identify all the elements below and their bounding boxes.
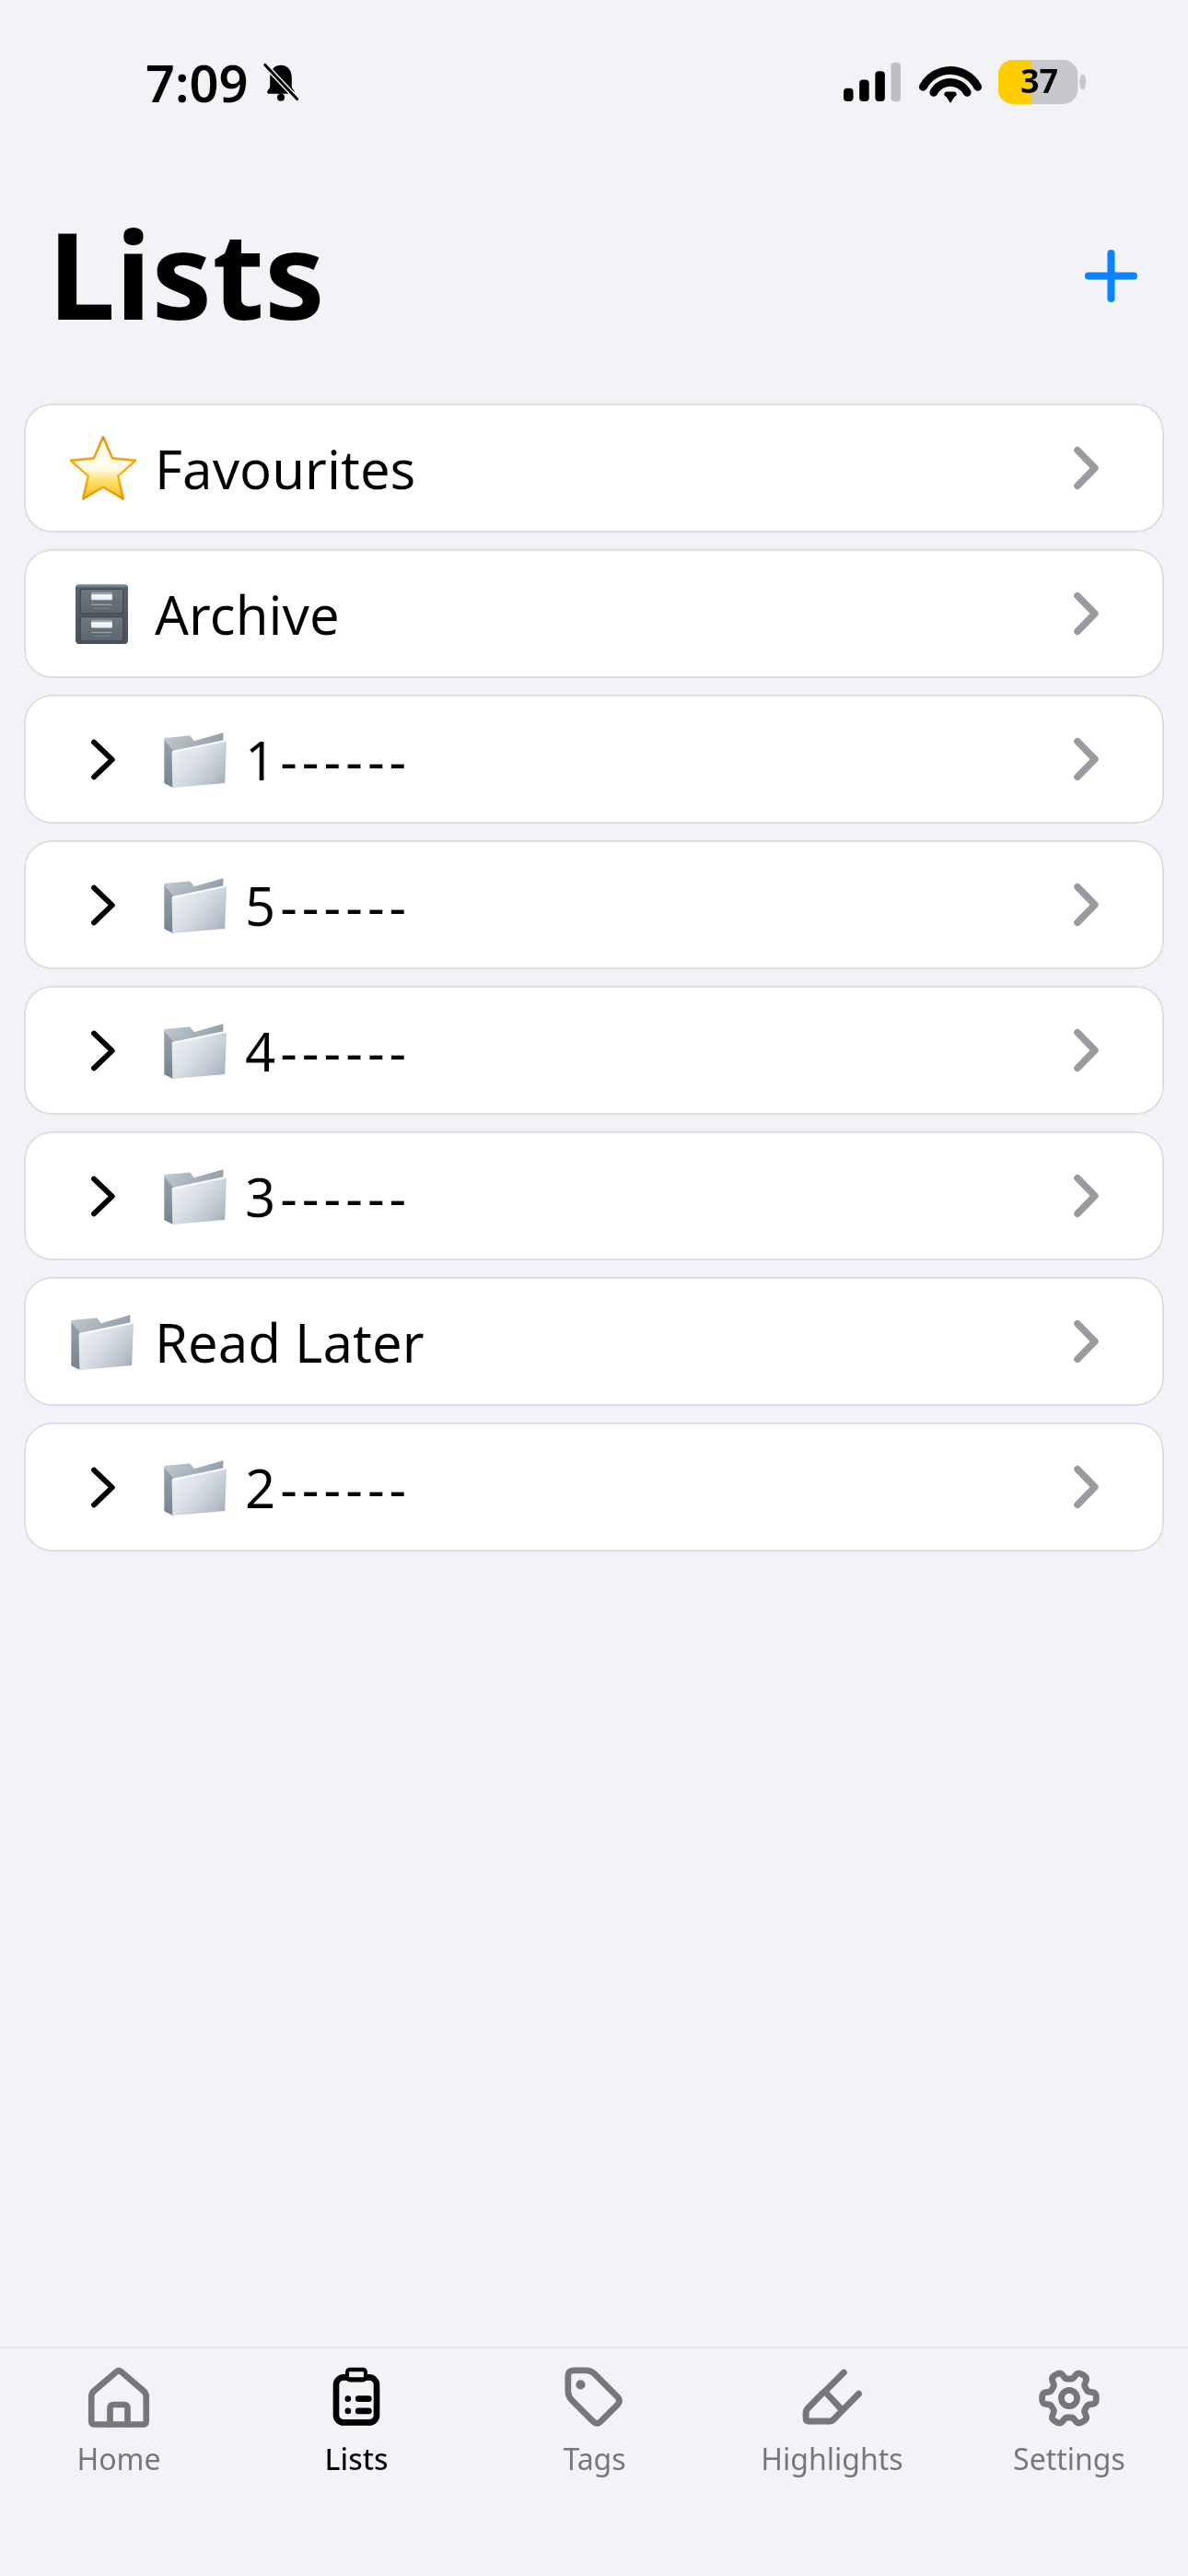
- staticText: Lists: [324, 2439, 389, 2479]
- staticText: 3------: [245, 1160, 412, 1233]
- staticText: Favourites: [155, 432, 416, 505]
- button[interactable]: Lists: [238, 2348, 475, 2576]
- button[interactable]: Expand 4------: [81, 1029, 123, 1071]
- button[interactable]: Expand 5------: [81, 884, 123, 926]
- button[interactable]: Expand 4------: [24, 986, 1164, 1115]
- button[interactable]: Add list: [1068, 239, 1142, 312]
- button[interactable]: Favourites: [24, 404, 1164, 533]
- staticText: Lists: [48, 191, 325, 355]
- button[interactable]: Archive: [24, 549, 1164, 678]
- staticText: 2------: [245, 1451, 412, 1524]
- button[interactable]: Expand 1------: [24, 695, 1164, 824]
- staticText: Home: [76, 2439, 161, 2479]
- staticText: Archive: [155, 578, 340, 650]
- button[interactable]: Expand 3------: [24, 1131, 1164, 1260]
- staticText: 37: [1020, 58, 1059, 103]
- button[interactable]: Read Later: [24, 1277, 1164, 1406]
- staticText: 7:09: [146, 47, 249, 117]
- staticText: 1------: [245, 723, 412, 796]
- staticText: Read Later: [155, 1306, 425, 1378]
- button[interactable]: Expand 3------: [81, 1175, 123, 1217]
- button[interactable]: Expand 2------: [81, 1466, 123, 1508]
- button[interactable]: Settings: [950, 2348, 1188, 2576]
- button[interactable]: Expand 5------: [24, 840, 1164, 969]
- staticText: 4------: [245, 1014, 412, 1087]
- staticText: 5------: [245, 869, 412, 942]
- staticText: Tags: [563, 2439, 626, 2479]
- staticText: Highlights: [761, 2439, 903, 2479]
- button[interactable]: Expand 1------: [81, 738, 123, 780]
- button[interactable]: Expand 2------: [24, 1423, 1164, 1551]
- button[interactable]: Highlights: [713, 2348, 950, 2576]
- staticText: Settings: [1013, 2439, 1125, 2479]
- button[interactable]: Home: [0, 2348, 238, 2576]
- button[interactable]: Tags: [475, 2348, 713, 2576]
